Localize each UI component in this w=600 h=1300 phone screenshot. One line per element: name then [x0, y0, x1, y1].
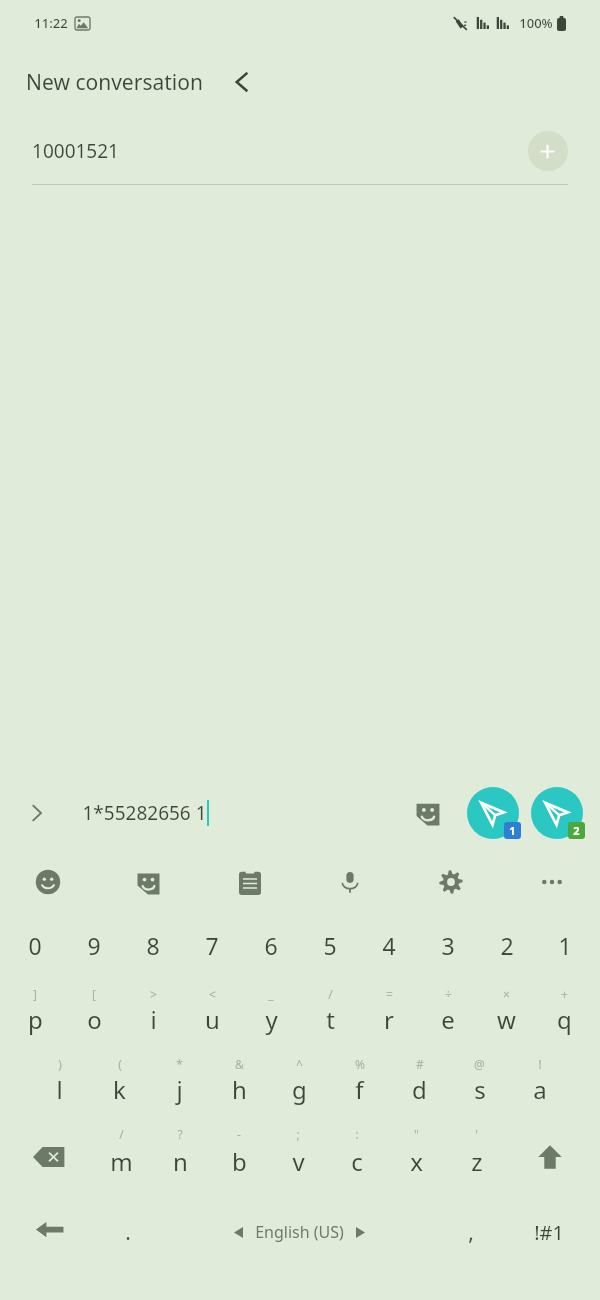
button[interactable]: %	[330, 1050, 390, 1120]
staticText: 4	[382, 930, 396, 961]
staticText: e	[441, 1003, 455, 1036]
staticText: a	[533, 1073, 547, 1106]
button[interactable]: Clipboard	[228, 860, 272, 904]
staticText: x	[410, 1145, 423, 1178]
button[interactable]: More options	[530, 860, 574, 904]
staticText: 7	[205, 930, 219, 961]
button[interactable]: 6	[242, 910, 301, 980]
staticText: 10001521	[32, 138, 119, 164]
button[interactable]: =	[360, 980, 419, 1050]
staticText: v	[292, 1145, 305, 1178]
button[interactable]: 10001521	[32, 138, 119, 164]
button[interactable]: ;	[269, 1120, 328, 1194]
staticText: 0	[28, 930, 42, 961]
button[interactable]: !	[510, 1050, 570, 1120]
staticText: t	[326, 1003, 335, 1036]
staticText: 9	[87, 930, 101, 961]
button[interactable]: ÷	[419, 980, 478, 1050]
button[interactable]: Sticker	[408, 793, 448, 833]
staticText: q	[557, 1003, 572, 1036]
staticText: 2	[500, 930, 514, 961]
staticText: k	[113, 1073, 126, 1106]
staticText: 8	[146, 930, 160, 961]
button[interactable]: Stickers	[127, 860, 171, 904]
button[interactable]: -	[210, 1120, 269, 1194]
button[interactable]: /	[92, 1120, 151, 1194]
button[interactable]: ^	[270, 1050, 330, 1120]
button[interactable]: [	[65, 980, 124, 1050]
staticText: !#1	[534, 1219, 564, 1246]
button[interactable]: 2	[478, 910, 536, 980]
staticText: 3	[441, 930, 455, 961]
button[interactable]: ]	[6, 980, 65, 1050]
button[interactable]: Send SIM 1	[464, 784, 522, 842]
button[interactable]: Add recipient	[528, 131, 568, 171]
button[interactable]: _	[242, 980, 301, 1050]
staticText: (	[118, 1056, 122, 1072]
button[interactable]: @	[450, 1050, 510, 1120]
button[interactable]: Shift	[507, 1120, 594, 1194]
button[interactable]: 1	[536, 910, 594, 980]
button[interactable]: 1*55282656 1	[82, 800, 209, 826]
button[interactable]: >	[124, 980, 183, 1050]
button[interactable]: :	[328, 1120, 387, 1194]
button[interactable]: ×	[478, 980, 536, 1050]
staticText: p	[28, 1003, 43, 1036]
staticText: 11:22	[34, 14, 68, 32]
button[interactable]: #	[390, 1050, 450, 1120]
button[interactable]: Enter	[6, 1194, 95, 1270]
button[interactable]: <	[183, 980, 242, 1050]
button[interactable]: )	[30, 1050, 90, 1120]
button[interactable]: Voice input	[328, 860, 372, 904]
staticText: @	[474, 1056, 485, 1072]
staticText: /	[119, 1126, 124, 1142]
button[interactable]: Backspace	[6, 1120, 92, 1194]
button[interactable]: New conversation	[26, 68, 203, 97]
button[interactable]: *	[150, 1050, 210, 1120]
staticText: g	[292, 1073, 307, 1106]
button[interactable]: 5	[301, 910, 360, 980]
button[interactable]: Space, English (US)	[161, 1194, 438, 1270]
staticText: :	[355, 1126, 359, 1142]
button[interactable]: !#1	[504, 1194, 594, 1270]
button[interactable]: '	[447, 1120, 507, 1194]
button[interactable]: Keyboard settings	[429, 860, 473, 904]
staticText: New conversation	[26, 68, 203, 97]
staticText: .	[125, 1218, 131, 1247]
button[interactable]: 7	[183, 910, 242, 980]
staticText: /	[328, 986, 333, 1002]
staticText: j	[176, 1073, 183, 1106]
button[interactable]: Expand	[14, 790, 60, 836]
button[interactable]: 4	[360, 910, 419, 980]
button[interactable]: 9	[65, 910, 124, 980]
staticText: !	[538, 1056, 542, 1072]
staticText: 1*55282656 1	[82, 800, 207, 826]
button[interactable]: 3	[419, 910, 478, 980]
staticText: ;	[296, 1126, 300, 1142]
staticText: 6	[264, 930, 278, 961]
button[interactable]: (	[90, 1050, 150, 1120]
button[interactable]: "	[387, 1120, 447, 1194]
staticText: "	[414, 1126, 419, 1142]
button[interactable]: Back	[215, 55, 269, 109]
staticText: *	[176, 1056, 183, 1072]
staticText: <	[209, 986, 216, 1002]
button[interactable]: ,	[438, 1194, 504, 1270]
staticText: &	[235, 1056, 244, 1072]
staticText: )	[58, 1056, 62, 1072]
button[interactable]: +	[536, 980, 594, 1050]
button[interactable]: .	[95, 1194, 161, 1270]
staticText: l	[56, 1073, 63, 1106]
button[interactable]: Emoji	[26, 860, 70, 904]
staticText: [	[92, 986, 96, 1002]
staticText: -	[237, 1126, 241, 1142]
button[interactable]: 8	[124, 910, 183, 980]
staticText: 1	[509, 823, 516, 838]
button[interactable]: &	[210, 1050, 270, 1120]
button[interactable]: /	[301, 980, 360, 1050]
button[interactable]: ?	[151, 1120, 210, 1194]
button[interactable]: Send SIM 2	[528, 784, 586, 842]
staticText: d	[412, 1073, 427, 1106]
staticText: %	[355, 1056, 365, 1072]
button[interactable]: 0	[6, 910, 65, 980]
